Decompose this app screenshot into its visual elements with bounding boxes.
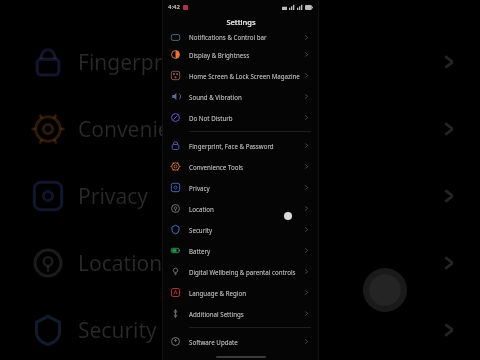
staticText: Fingerprint, Face & Password <box>189 142 302 150</box>
staticText: Software Update <box>189 338 302 346</box>
staticText: Display & Brightness <box>189 51 302 59</box>
staticText: Location <box>78 249 163 278</box>
staticText: Language & Region <box>189 289 302 297</box>
button[interactable]: Home Screen & Lock Screen Magazine <box>163 65 318 86</box>
staticText: Convenience Tools <box>189 163 302 171</box>
button[interactable]: Additional Settings <box>163 303 318 324</box>
button[interactable]: Battery <box>163 240 318 261</box>
staticText: Notifications & Control bar <box>189 33 302 41</box>
staticText: Digital Wellbeing & parental controls <box>189 268 302 276</box>
staticText: Privacy <box>189 184 302 192</box>
staticText: Do Not Disturb <box>189 114 302 122</box>
button[interactable]: Security <box>163 219 318 240</box>
staticText: Settings <box>226 17 256 27</box>
button[interactable]: Do Not Disturb <box>163 107 318 128</box>
staticText: Home Screen & Lock Screen Magazine <box>189 72 302 80</box>
staticText: Battery <box>189 247 302 255</box>
staticText: Security <box>78 316 157 345</box>
button[interactable]: Sound & Vibration <box>163 86 318 107</box>
button[interactable]: Convenience Tools <box>163 156 318 177</box>
button[interactable]: Notifications & Control bar <box>163 30 318 44</box>
button[interactable]: Digital Wellbeing & parental controls <box>163 261 318 282</box>
button[interactable]: Software Update <box>163 331 318 352</box>
staticText: 4:42 <box>168 3 180 11</box>
staticText: Sound & Vibration <box>189 93 302 101</box>
button[interactable]: Fingerprint, Face & Password <box>163 135 318 156</box>
staticText: Privacy <box>78 182 149 211</box>
staticText: Convenience <box>78 115 205 144</box>
staticText: Additional Settings <box>189 310 302 318</box>
button[interactable]: Location <box>163 198 318 219</box>
button[interactable]: Privacy <box>163 177 318 198</box>
button[interactable]: Language & Region <box>163 282 318 303</box>
staticText: Location <box>189 205 302 213</box>
staticText: Fingerprint <box>78 48 189 77</box>
staticText: Security <box>189 226 302 234</box>
button[interactable]: Display & Brightness <box>163 44 318 65</box>
